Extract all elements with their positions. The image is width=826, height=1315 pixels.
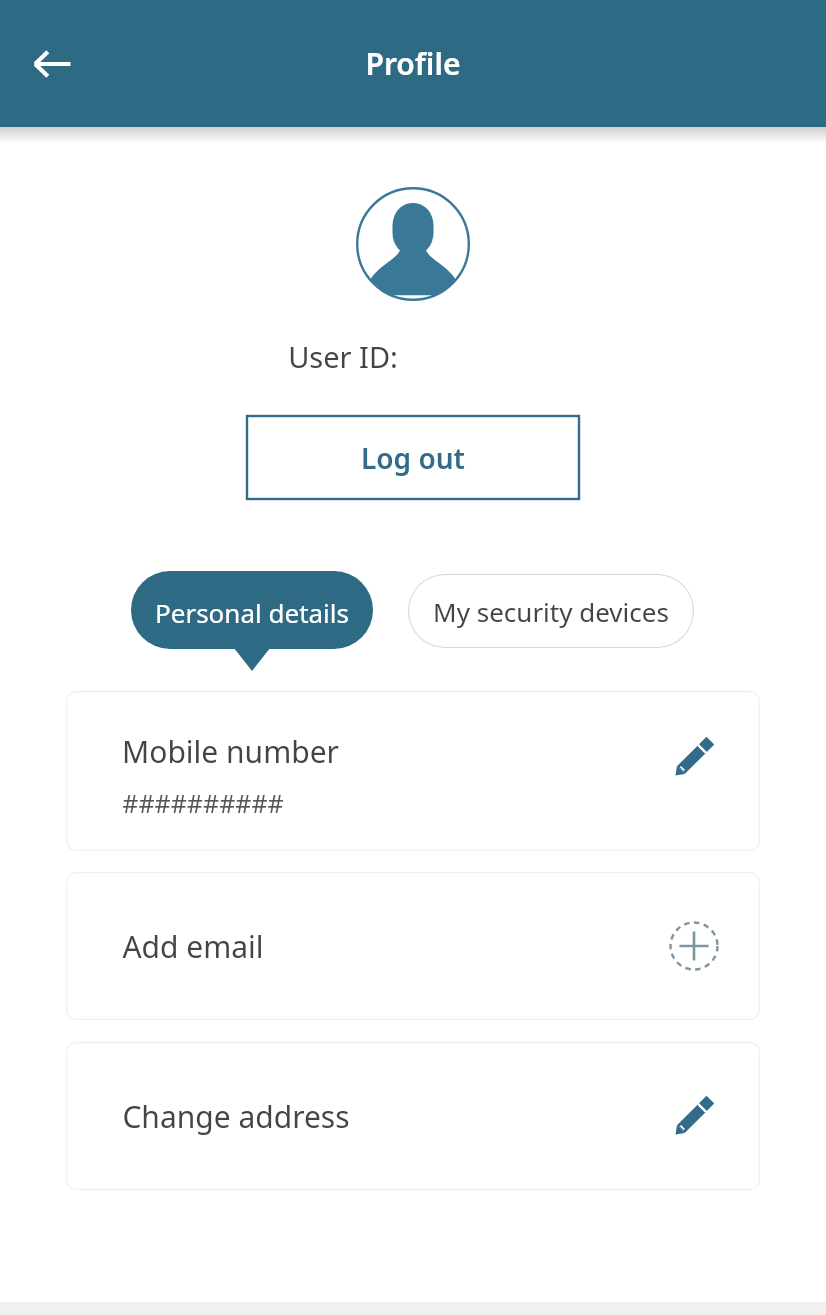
button[interactable]: Edit Change address xyxy=(662,1084,726,1148)
button[interactable]: My security devices xyxy=(408,574,694,648)
staticText: My security devices xyxy=(433,594,669,629)
button[interactable]: Back xyxy=(22,34,82,94)
staticText: Mobile number xyxy=(122,731,339,772)
staticText: User ID: xyxy=(288,337,398,376)
button[interactable]: Add Add email xyxy=(662,914,726,978)
staticText: Personal details xyxy=(155,595,349,630)
button[interactable]: Log out xyxy=(247,416,579,499)
button[interactable]: Change address xyxy=(66,1042,760,1190)
button[interactable]: Personal details xyxy=(131,571,373,671)
staticText: Profile xyxy=(365,43,461,84)
staticText: Add email xyxy=(122,926,264,967)
button[interactable]: Edit Mobile number xyxy=(662,725,726,789)
button[interactable]: Mobile number xyxy=(66,691,760,851)
staticText: ########## xyxy=(122,786,284,820)
staticText: Change address xyxy=(122,1096,350,1137)
button[interactable]: Add email xyxy=(66,872,760,1020)
staticText: Log out xyxy=(361,439,465,477)
